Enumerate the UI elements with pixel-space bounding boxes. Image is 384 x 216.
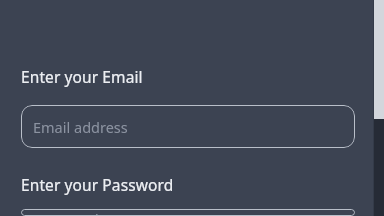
button[interactable]: Password xyxy=(21,209,355,216)
staticText: Password xyxy=(33,209,99,216)
staticText: Email address xyxy=(33,117,128,137)
button[interactable]: Email address xyxy=(21,105,355,148)
staticText: Enter your Email xyxy=(21,66,143,87)
staticText: Enter your Password xyxy=(21,174,174,195)
